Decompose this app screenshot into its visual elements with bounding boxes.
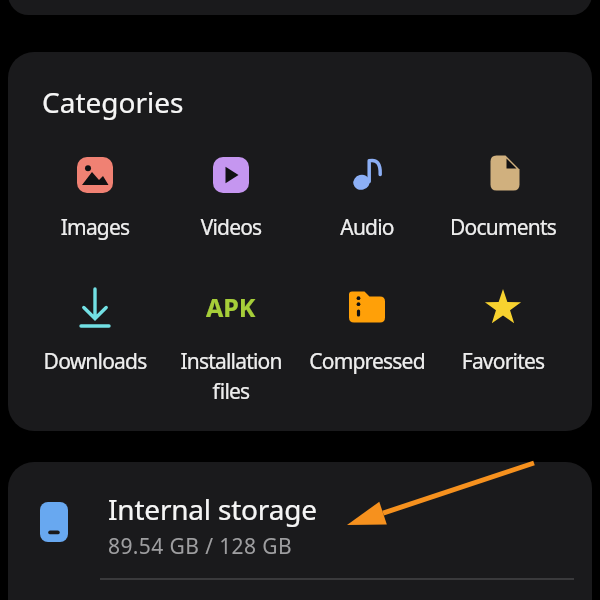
staticText: Internal storage [108, 490, 317, 528]
button[interactable]: APK [163, 285, 299, 405]
button[interactable]: Downloads [27, 285, 163, 376]
button[interactable]: Documents [435, 153, 571, 242]
staticText: Videos [163, 213, 299, 242]
staticText: APK [206, 290, 256, 324]
staticText: Favorites [435, 347, 571, 376]
button[interactable]: Favorites [435, 285, 571, 376]
staticText: Audio [299, 213, 435, 242]
button[interactable]: Videos [163, 153, 299, 242]
button[interactable]: Audio [299, 153, 435, 242]
staticText: Downloads [27, 347, 163, 376]
staticText: 89.54 GB / 128 GB [108, 532, 293, 561]
button[interactable]: Compressed [299, 285, 435, 376]
staticText: Installation files [163, 347, 299, 405]
staticText: Compressed [299, 347, 435, 376]
staticText: Documents [435, 213, 571, 242]
button[interactable] [8, 480, 592, 566]
staticText: Categories [42, 83, 184, 121]
button[interactable]: Images [27, 153, 163, 242]
staticText: Images [27, 213, 163, 242]
